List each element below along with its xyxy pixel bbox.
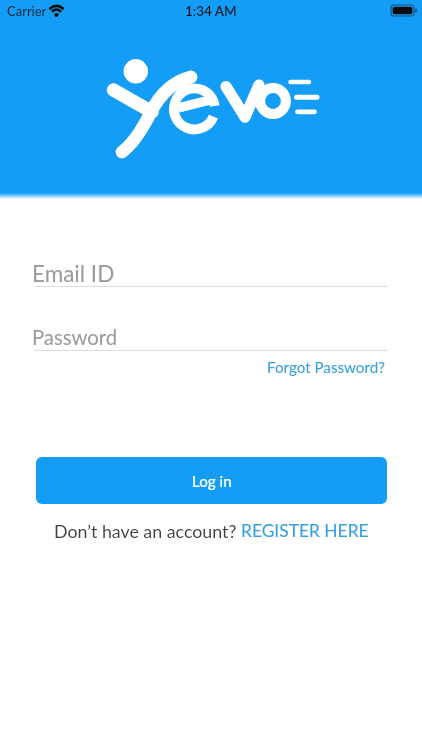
staticText: Password bbox=[32, 325, 118, 349]
button[interactable]: Log in bbox=[36, 457, 387, 504]
staticText: Don’t have an account? bbox=[54, 520, 241, 541]
button[interactable]: REGISTER HERE bbox=[241, 520, 369, 541]
staticText: Log in bbox=[192, 472, 232, 490]
staticText: 1:34 AM bbox=[185, 3, 237, 19]
button[interactable]: Forgot Password? bbox=[267, 358, 386, 376]
staticText: Carrier bbox=[7, 3, 47, 19]
staticText: Email ID bbox=[32, 260, 115, 287]
